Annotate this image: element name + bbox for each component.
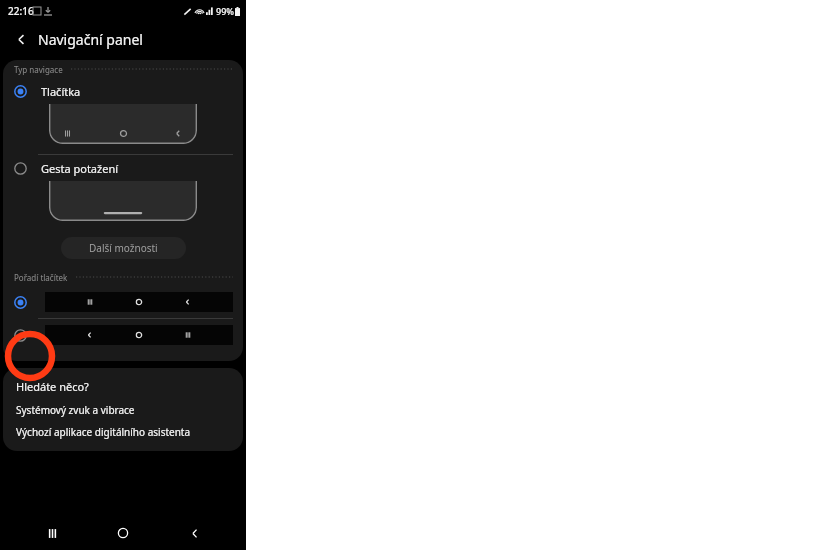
button[interactable]: Systémový zvuk a vibrace	[16, 403, 233, 417]
staticText: 99%	[216, 5, 234, 17]
staticText: Systémový zvuk a vibrace	[16, 403, 135, 417]
button[interactable]: Back	[175, 516, 215, 550]
button[interactable]: Gesta potažení	[3, 155, 243, 181]
staticText: Gesta potažení	[41, 161, 119, 176]
button[interactable]	[49, 104, 197, 144]
staticText: Tlačítka	[41, 84, 81, 99]
staticText: Další možnosti	[89, 241, 158, 255]
button[interactable]: Tlačítka	[3, 78, 243, 104]
staticText: 22:16	[8, 4, 34, 18]
staticText: Pořadí tlačítek	[14, 272, 68, 283]
staticText: Hledáte něco?	[16, 379, 89, 394]
button[interactable]: Back	[10, 28, 32, 50]
staticText: Výchozí aplikace digitálního asistenta	[16, 425, 191, 439]
button[interactable]: Recents	[32, 516, 72, 550]
button[interactable]	[3, 286, 243, 318]
staticText: Typ navigace	[14, 64, 63, 75]
button[interactable]	[3, 319, 243, 351]
button[interactable]	[49, 181, 197, 221]
button[interactable]: Home	[103, 516, 143, 550]
button[interactable]: Výchozí aplikace digitálního asistenta	[16, 425, 233, 439]
button[interactable]: Další možnosti	[61, 237, 186, 259]
staticText: Navigační panel	[38, 30, 143, 49]
